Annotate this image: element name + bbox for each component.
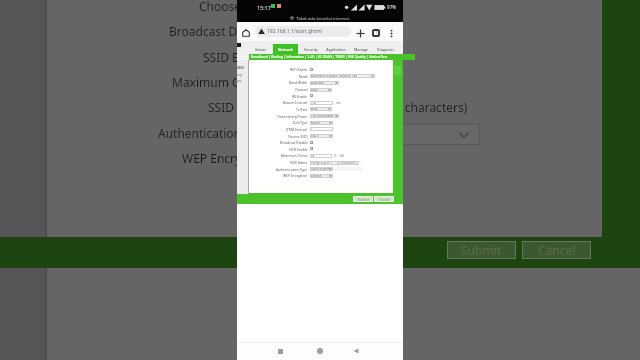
staticText: Tenda Sub-06 (1 ~ 32 characters) <box>285 99 468 115</box>
staticText: SSID Name <box>290 160 308 164</box>
staticText: Open System <box>311 167 330 171</box>
staticText: Broadcast Disable <box>169 23 271 39</box>
staticText: Choose SSID <box>288 134 308 138</box>
button[interactable]: Submit <box>447 241 516 259</box>
staticText: 4G/5 <box>237 66 244 70</box>
staticText: Band Width <box>289 80 308 84</box>
button[interactable]: Back <box>349 344 363 358</box>
button[interactable]: Network <box>273 44 298 54</box>
staticText: Broadband | Binding | Information | 2.4G… <box>251 55 388 59</box>
staticText: Choose SSID <box>199 0 271 14</box>
staticText: SSID Enable <box>203 49 271 65</box>
staticText: Diagnosis <box>377 47 394 52</box>
staticText: Mode <box>299 74 308 78</box>
staticText: 1 <box>311 127 313 131</box>
button[interactable]: Home page <box>240 27 252 39</box>
staticText: Cancel <box>538 242 576 258</box>
staticText: Auto <box>311 88 318 92</box>
staticText: Manage <box>354 47 368 52</box>
staticText: SSID Name <box>208 99 271 115</box>
staticText: DTIM Interval <box>286 127 308 131</box>
button[interactable]: Status <box>248 44 273 54</box>
button[interactable]: Cancel <box>374 196 394 202</box>
staticText: Mixed <box>311 121 320 125</box>
button[interactable]: Cancel <box>522 241 591 259</box>
button[interactable]: 192.168.1.1/start.ghtml <box>255 26 351 37</box>
staticText: 32 <box>311 154 315 158</box>
staticText: (1 ~ 32) <box>334 154 345 158</box>
staticText: Network <box>278 47 293 52</box>
staticText: Authentication Type <box>276 167 308 171</box>
staticText: 1 <box>375 30 378 36</box>
button[interactable]: Application <box>323 44 348 54</box>
staticText: 100%(Standard) <box>311 114 334 118</box>
staticText: Maximum Clients <box>172 74 271 90</box>
staticText: SSID Enable <box>289 147 308 151</box>
staticText: Beacon Interval <box>283 100 308 104</box>
staticText: DoS Type <box>293 120 308 124</box>
button[interactable]: More options <box>385 27 397 39</box>
staticText: WiFi Switch <box>290 67 308 71</box>
button[interactable]: New tab <box>354 27 366 39</box>
staticText: 100 <box>311 101 317 105</box>
staticText: Submit <box>358 197 369 201</box>
button[interactable]: Home <box>313 344 327 358</box>
staticText: Submit <box>461 242 502 258</box>
staticText: Broadcast Disable <box>280 140 308 144</box>
staticText: Auto/Mix <box>311 81 324 85</box>
staticText: Authentication Type <box>158 125 271 141</box>
staticText: Tidak ada koneksi internet <box>296 15 350 21</box>
button[interactable]: Diagnosis <box>373 44 398 54</box>
staticText: Automatic (Disable Toggled) Tips <box>311 74 357 78</box>
staticText: ing <box>237 73 242 77</box>
staticText: Security <box>304 47 318 52</box>
staticText: Application <box>326 47 346 52</box>
button[interactable]: Submit <box>353 196 373 202</box>
staticText: 192.168.1.1/start.ghtml <box>267 28 322 35</box>
staticText: 97% <box>387 4 397 10</box>
button[interactable]: Security <box>298 44 323 54</box>
staticText: WEP Encryption <box>283 173 308 177</box>
staticText: 15:17 <box>257 4 271 11</box>
staticText: Channel <box>295 87 308 91</box>
staticText: Wl Enable <box>292 94 308 98</box>
staticText: Auto <box>311 107 318 111</box>
staticText: Tenda Sub-06 (1 ~ 32 characters) <box>311 161 357 165</box>
staticText: Tx Rate <box>296 107 308 111</box>
button[interactable]: Open tabs <box>370 27 382 39</box>
staticText: ms <box>336 101 341 105</box>
staticText: Cancel <box>379 197 390 201</box>
staticText: Disable <box>311 174 322 178</box>
button[interactable]: Recent apps <box>273 344 287 358</box>
button[interactable]: Manage <box>348 44 373 54</box>
staticText: WEP Encryption <box>182 150 271 166</box>
staticText: pts <box>237 79 242 83</box>
staticText: Transmitting Power <box>277 114 308 118</box>
staticText: Maximum Clients <box>281 153 308 157</box>
staticText: SSID1 <box>311 134 320 138</box>
staticText: Status <box>255 47 266 52</box>
